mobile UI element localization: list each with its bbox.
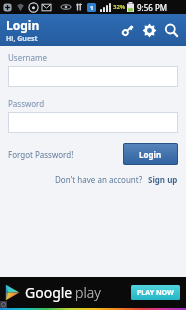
button[interactable]: Key [116, 14, 138, 46]
button[interactable]: Settings [138, 14, 160, 46]
button[interactable]: PLAY NOW [131, 285, 180, 300]
staticText: PLAY NOW [137, 288, 174, 298]
staticText: 9:56 PM [137, 2, 168, 13]
staticText: Hi, Guest [6, 34, 38, 44]
button[interactable]: Sign up [148, 174, 178, 185]
staticText: Sign up [148, 174, 178, 185]
staticText: 1 [90, 4, 94, 12]
staticText: Login [6, 17, 40, 33]
staticText: Password [8, 98, 45, 109]
staticText: play [75, 283, 101, 302]
button[interactable]: Forgot Password! [8, 145, 74, 164]
staticText: 32% [113, 3, 126, 11]
staticText: Login [139, 149, 162, 160]
button[interactable]: Search [160, 14, 182, 46]
staticText: Don't have an account? [55, 174, 143, 185]
staticText: Username [8, 52, 47, 63]
button[interactable] [8, 112, 178, 133]
button[interactable] [8, 66, 178, 87]
staticText: Forgot Password! [8, 149, 74, 160]
staticText: Google [25, 283, 73, 302]
button[interactable]: Login [123, 143, 178, 165]
